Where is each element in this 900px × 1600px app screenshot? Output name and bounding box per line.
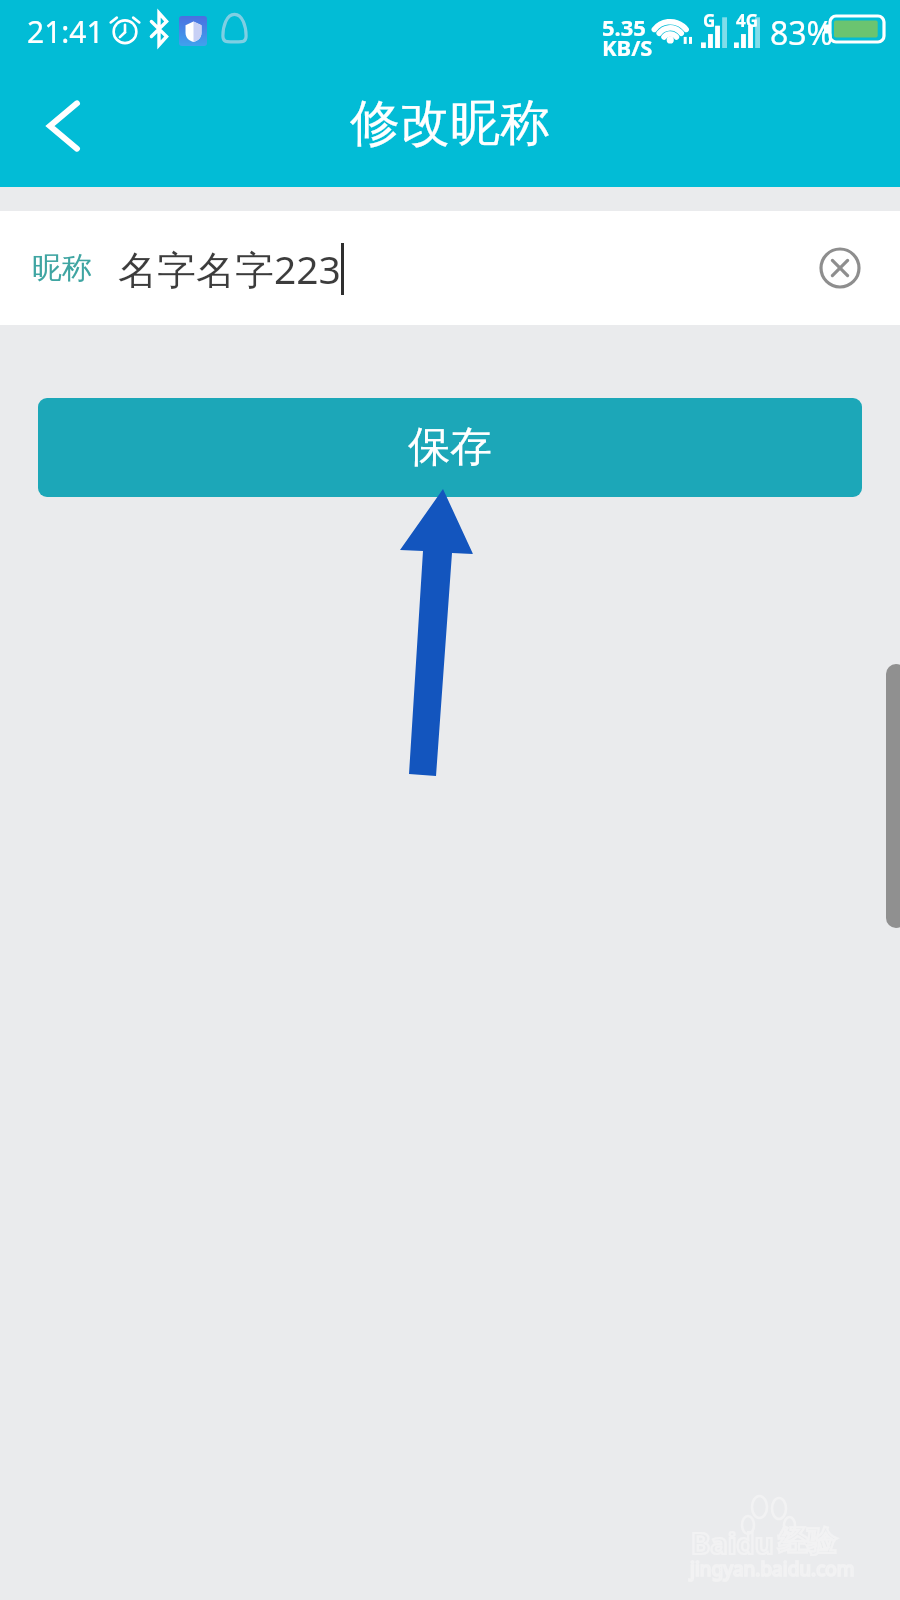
staticText: 5.35	[602, 12, 646, 42]
button[interactable]: Clear text	[798, 226, 882, 310]
staticText: 保存	[408, 421, 492, 474]
staticText: 名字名字223	[118, 242, 341, 295]
button[interactable]: Back	[18, 80, 110, 172]
staticText: 经验	[778, 1523, 836, 1560]
staticText: KB/S	[602, 32, 653, 62]
staticText: 4G	[736, 9, 759, 32]
staticText: 昵称	[32, 249, 92, 287]
staticText: G	[703, 9, 716, 32]
staticText: jingyan.baidu.com	[690, 1556, 855, 1582]
button[interactable]: 保存	[38, 398, 862, 497]
staticText: 83%	[770, 11, 834, 55]
staticText: 修改昵称	[350, 92, 550, 155]
staticText: 21:41	[27, 11, 104, 52]
button[interactable]: 昵称	[0, 211, 900, 325]
staticText: Baidu	[691, 1523, 774, 1562]
